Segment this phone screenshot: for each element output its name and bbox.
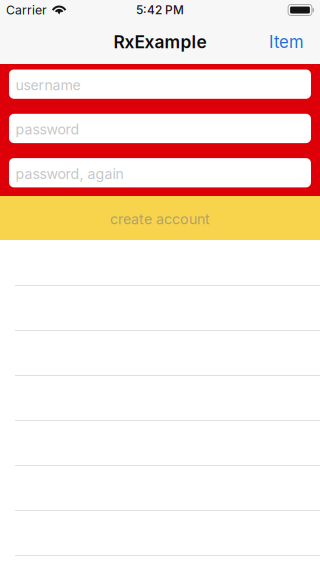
staticText: Item <box>269 32 304 52</box>
staticText: username <box>16 77 81 94</box>
button[interactable] <box>0 286 320 331</box>
staticText: 5:42 PM <box>136 3 184 17</box>
button[interactable] <box>0 331 320 376</box>
button[interactable] <box>0 376 320 421</box>
staticText: password, again <box>16 165 124 182</box>
button[interactable]: create account <box>0 196 320 240</box>
staticText: Carrier <box>6 3 47 17</box>
staticText: password <box>16 121 80 138</box>
button[interactable] <box>0 511 320 556</box>
button[interactable] <box>0 421 320 466</box>
staticText: RxExample <box>113 31 206 52</box>
button[interactable] <box>0 466 320 511</box>
button[interactable] <box>0 241 320 286</box>
staticText: create account <box>110 210 210 228</box>
button[interactable]: Item <box>261 20 312 64</box>
